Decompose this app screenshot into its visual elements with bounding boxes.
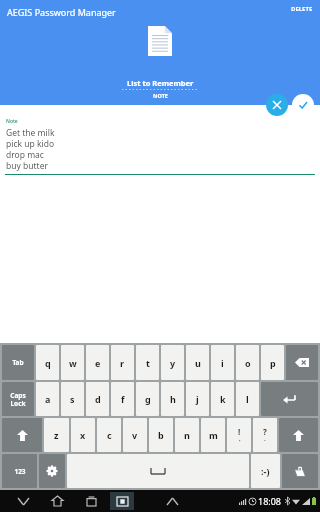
- staticText: x: [80, 429, 86, 441]
- staticText: y: [170, 357, 176, 369]
- staticText: DELETE: [291, 5, 313, 13]
- staticText: b: [158, 429, 164, 441]
- staticText: f: [121, 393, 125, 405]
- button[interactable]: y: [161, 345, 184, 380]
- button[interactable]: v: [123, 418, 147, 452]
- staticText: :-): [261, 465, 270, 477]
- button[interactable]: f: [111, 382, 134, 416]
- button[interactable]: u: [186, 345, 209, 380]
- button[interactable]: k: [211, 382, 234, 416]
- button[interactable]: clip: [282, 454, 318, 488]
- staticText: l: [246, 393, 249, 405]
- staticText: List to Remember: [127, 78, 194, 88]
- button[interactable]: r: [111, 345, 134, 380]
- button[interactable]: enter: [261, 382, 318, 416]
- button[interactable]: shift: [2, 418, 42, 452]
- staticText: t: [146, 357, 150, 369]
- button[interactable]: m: [201, 418, 225, 452]
- button[interactable]: e: [86, 345, 109, 380]
- staticText: s: [70, 393, 75, 405]
- staticText: d: [95, 393, 101, 405]
- button[interactable]: a: [36, 382, 59, 416]
- staticText: g: [145, 393, 151, 405]
- button[interactable]: z: [44, 418, 69, 452]
- button[interactable]: space: [67, 454, 249, 488]
- button[interactable]: Save: [292, 94, 314, 116]
- staticText: ,: [239, 435, 241, 443]
- button[interactable]: t: [136, 345, 159, 380]
- button[interactable]: h: [161, 382, 184, 416]
- button[interactable]: c: [97, 418, 121, 452]
- staticText: Note: [6, 118, 18, 125]
- button[interactable]: Cancel: [266, 94, 288, 116]
- button[interactable]: j: [186, 382, 209, 416]
- staticText: i: [221, 357, 224, 369]
- button[interactable]: Switch keyboard: [110, 492, 134, 510]
- button[interactable]: backspace: [286, 345, 318, 380]
- staticText: .: [264, 435, 266, 443]
- button[interactable]: g: [136, 382, 159, 416]
- staticText: 18:08: [258, 495, 282, 507]
- staticText: 123: [14, 467, 26, 476]
- button[interactable]: x: [71, 418, 95, 452]
- button[interactable]: Caps Lock: [2, 382, 34, 416]
- staticText: a: [45, 393, 51, 405]
- button[interactable]: gear: [39, 454, 65, 488]
- button[interactable]: q: [36, 345, 59, 380]
- staticText: w: [69, 357, 77, 369]
- staticText: n: [184, 429, 190, 441]
- staticText: v: [132, 429, 138, 441]
- button[interactable]: Note: [5, 118, 315, 175]
- staticText: u: [195, 357, 201, 369]
- button[interactable]: l: [236, 382, 259, 416]
- staticText: h: [170, 393, 176, 405]
- button[interactable]: p: [261, 345, 284, 380]
- button[interactable]: Tab: [2, 345, 34, 380]
- button[interactable]: 123: [2, 454, 37, 488]
- staticText: z: [54, 429, 59, 441]
- button[interactable]: Home: [44, 490, 70, 512]
- staticText: c: [107, 429, 112, 441]
- staticText: o: [245, 357, 251, 369]
- button[interactable]: b: [149, 418, 173, 452]
- button[interactable]: Expand: [160, 490, 184, 512]
- button[interactable]: shift: [279, 418, 318, 452]
- button[interactable]: d: [86, 382, 109, 416]
- button[interactable]: s: [61, 382, 84, 416]
- staticText: AEGIS Password Manager: [7, 6, 116, 18]
- staticText: Tab: [12, 358, 24, 367]
- button[interactable]: Recents: [78, 490, 104, 512]
- button[interactable]: o: [236, 345, 259, 380]
- staticText: ?: [263, 426, 267, 437]
- staticText: p: [270, 357, 276, 369]
- button[interactable]: :-): [251, 454, 280, 488]
- staticText: e: [95, 357, 101, 369]
- staticText: m: [209, 429, 218, 441]
- button[interactable]: !: [227, 418, 251, 452]
- button[interactable]: DELETE: [281, 0, 320, 18]
- staticText: q: [45, 357, 51, 369]
- staticText: j: [196, 393, 199, 405]
- button[interactable]: n: [175, 418, 199, 452]
- button[interactable]: i: [211, 345, 234, 380]
- staticText: !: [238, 426, 241, 437]
- staticText: r: [120, 357, 125, 369]
- staticText: Get the milk pick up kido drop mac buy b…: [6, 127, 55, 171]
- staticText: k: [220, 393, 226, 405]
- staticText: Caps Lock: [10, 391, 26, 408]
- staticText: NOTE: [153, 92, 168, 99]
- button[interactable]: w: [61, 345, 84, 380]
- button[interactable]: Hide keyboard: [10, 490, 36, 512]
- button[interactable]: ?: [253, 418, 277, 452]
